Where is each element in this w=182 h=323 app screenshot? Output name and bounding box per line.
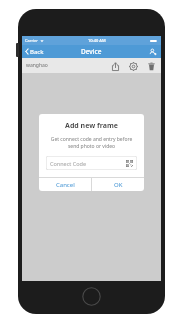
staticText: Get connect code and entry before send p… [45, 136, 138, 150]
button[interactable]: Settings [127, 60, 139, 72]
button[interactable]: Connect Code [46, 156, 137, 170]
staticText: 10:40 AM [88, 38, 106, 43]
staticText: OK [114, 181, 123, 189]
staticText: wanghao [26, 62, 48, 69]
button[interactable]: Cancel [39, 178, 91, 191]
staticText: Device [81, 47, 102, 56]
button[interactable]: Scan QR code [125, 159, 134, 168]
button[interactable]: Back [22, 45, 50, 58]
staticText: Cancel [56, 181, 75, 189]
staticText: Add new frame [39, 121, 144, 131]
button[interactable]: OK [92, 178, 144, 191]
staticText: Back [30, 48, 44, 56]
button[interactable]: Delete [145, 60, 157, 72]
button[interactable]: Add contact [145, 45, 161, 58]
button[interactable]: Share [109, 60, 121, 72]
staticText: Carrier [25, 38, 39, 43]
staticText: Connect Code [50, 160, 87, 167]
